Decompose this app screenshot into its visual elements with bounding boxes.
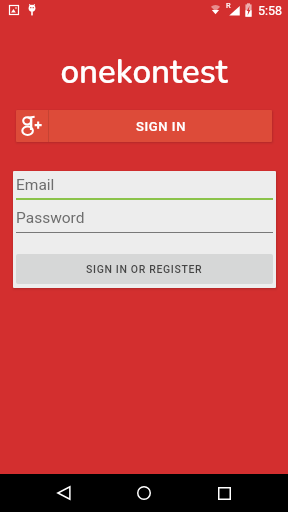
staticText: SIGN IN OR REGISTER [86, 263, 203, 275]
staticText: R [226, 1, 231, 10]
button[interactable]: SIGN IN OR REGISTER [16, 254, 273, 284]
staticText: 5:58 [258, 3, 283, 18]
button[interactable]: Recent apps [200, 474, 248, 512]
staticText: Email [16, 176, 55, 194]
staticText: SIGN IN [136, 119, 186, 134]
staticText: onekontest [0, 50, 288, 95]
button[interactable]: Home [120, 474, 168, 512]
button[interactable]: SIGN IN [16, 110, 272, 142]
staticText: Password [16, 209, 85, 227]
button[interactable]: Back [40, 474, 88, 512]
